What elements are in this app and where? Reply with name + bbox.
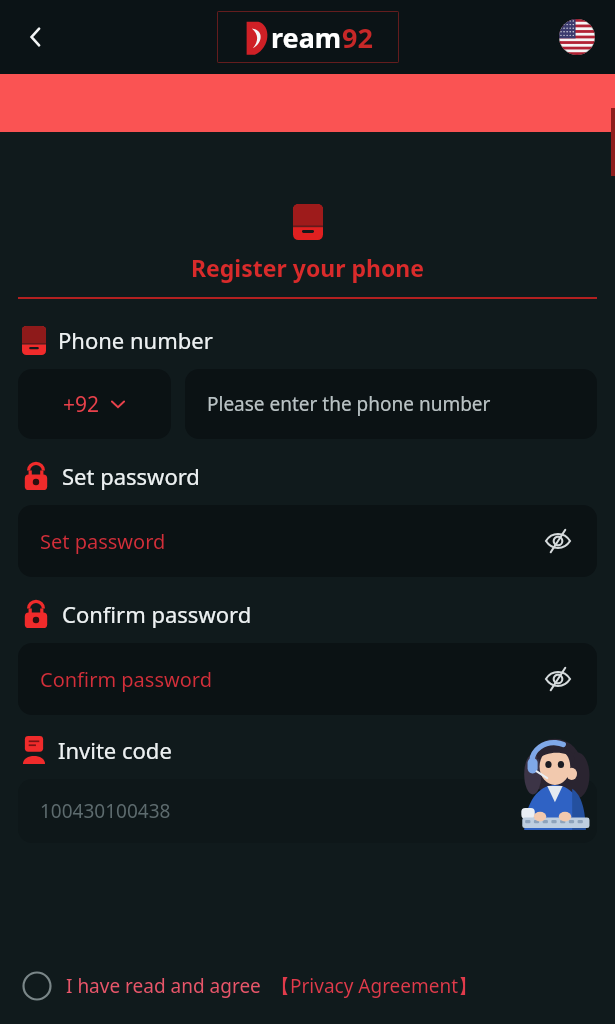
staticText: Confirm password — [40, 666, 212, 693]
staticText: ream — [271, 19, 342, 56]
button[interactable]: 【Privacy Agreement】 — [271, 973, 478, 999]
button[interactable]: Set password — [18, 505, 597, 577]
button[interactable]: 100430100438 — [18, 779, 597, 843]
staticText: 100430100438 — [40, 798, 171, 824]
staticText: Phone number — [58, 325, 213, 355]
staticText: Invite code — [58, 735, 172, 765]
staticText: Register your phone — [0, 252, 615, 283]
button[interactable]: ream — [217, 11, 399, 63]
button[interactable]: Customer support — [505, 735, 601, 831]
staticText: I have read and agree — [66, 973, 261, 999]
button[interactable]: Language — [555, 15, 599, 59]
staticText: +92 — [63, 390, 100, 419]
staticText: Set password — [62, 461, 200, 491]
staticText: Confirm password — [62, 599, 252, 629]
button[interactable]: Please enter the phone number — [185, 369, 597, 439]
button[interactable]: +92 — [18, 369, 171, 439]
staticText: Please enter the phone number — [207, 391, 491, 417]
button[interactable]: Show password — [541, 524, 575, 558]
staticText: Set password — [40, 528, 166, 555]
button[interactable]: I have read and agree — [0, 954, 615, 1018]
button[interactable]: Confirm password — [18, 643, 597, 715]
button[interactable]: Show password — [541, 662, 575, 696]
button[interactable]: Back — [12, 13, 60, 61]
staticText: 92 — [342, 19, 373, 56]
